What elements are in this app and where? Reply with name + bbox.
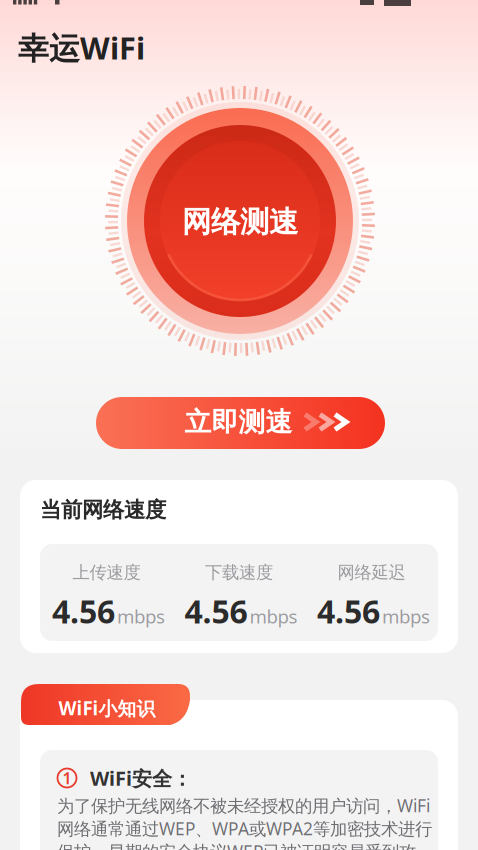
staticText: 立即测速	[184, 406, 292, 438]
staticText: WiFi安全：	[90, 765, 192, 791]
staticText: 4.56	[52, 590, 115, 632]
staticText: 当前网络速度	[40, 497, 166, 523]
button[interactable]: 立即测速	[96, 397, 385, 449]
staticText: 网络测速	[182, 204, 298, 240]
staticText: 上传速度	[72, 562, 140, 583]
staticText: 4.56	[184, 590, 247, 632]
button[interactable]: 网络测速	[144, 125, 336, 317]
staticText: 下载速度	[205, 562, 273, 583]
staticText: 保护。早期的安全协议WEP已被证明容易受到攻	[57, 840, 416, 850]
staticText: 1	[62, 767, 71, 789]
staticText: 网络通常通过WEP、WPA或WPA2等加密技术进行	[57, 817, 432, 840]
staticText: mbps	[117, 604, 165, 629]
staticText: 网络延迟	[337, 562, 405, 583]
staticText: mbps	[382, 604, 430, 629]
staticText: 4.56	[317, 590, 380, 632]
staticText: 幸运WiFi	[18, 27, 145, 68]
staticText: WiFi小知识	[58, 696, 155, 720]
staticText: 为了保护无线网络不被未经授权的用户访问，WiFi	[57, 794, 430, 817]
staticText: mbps	[249, 604, 297, 629]
